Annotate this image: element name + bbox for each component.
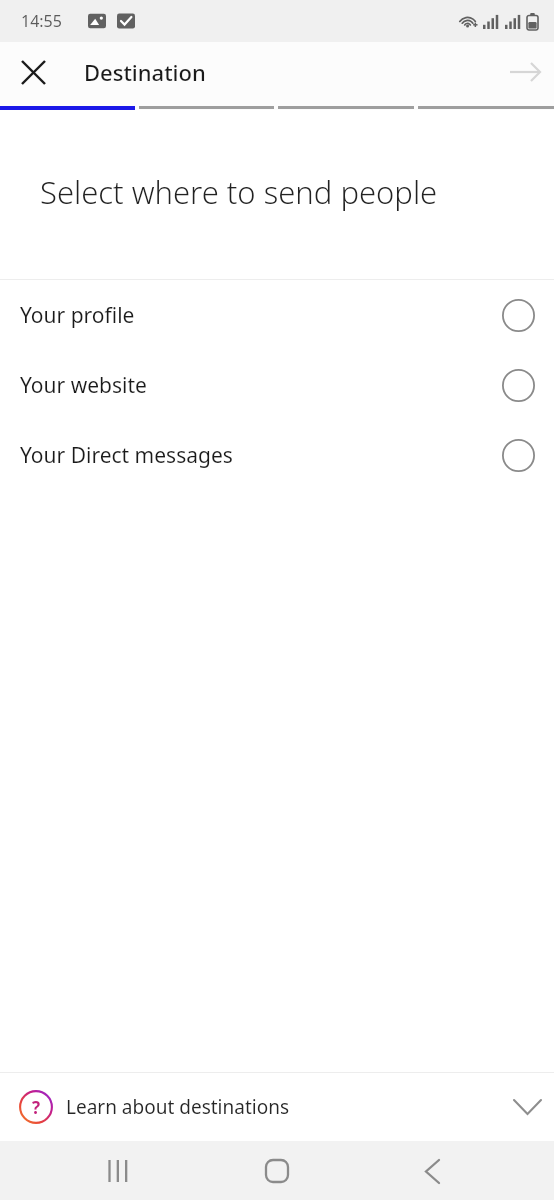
staticText: ? (32, 1096, 41, 1119)
staticText: Learn about destinations (66, 1094, 290, 1120)
staticText: 14:55 (21, 10, 62, 32)
button[interactable]: Next (501, 48, 549, 96)
button[interactable]: Recents (94, 1147, 142, 1195)
button[interactable]: Close (9, 48, 57, 96)
button[interactable]: Home (253, 1147, 301, 1195)
button[interactable]: Your website (0, 350, 554, 420)
button[interactable]: Your Direct messages (0, 420, 554, 490)
button[interactable]: Expand (504, 1084, 550, 1130)
button[interactable]: Learn about destinations (0, 1073, 554, 1141)
staticText: Your website (20, 371, 147, 400)
staticText: Your profile (20, 301, 135, 330)
button[interactable]: Back (408, 1147, 456, 1195)
staticText: Destination (84, 57, 206, 87)
staticText: Select where to send people (40, 171, 438, 213)
staticText: Your Direct messages (20, 441, 233, 470)
button[interactable]: Your profile (0, 280, 554, 350)
